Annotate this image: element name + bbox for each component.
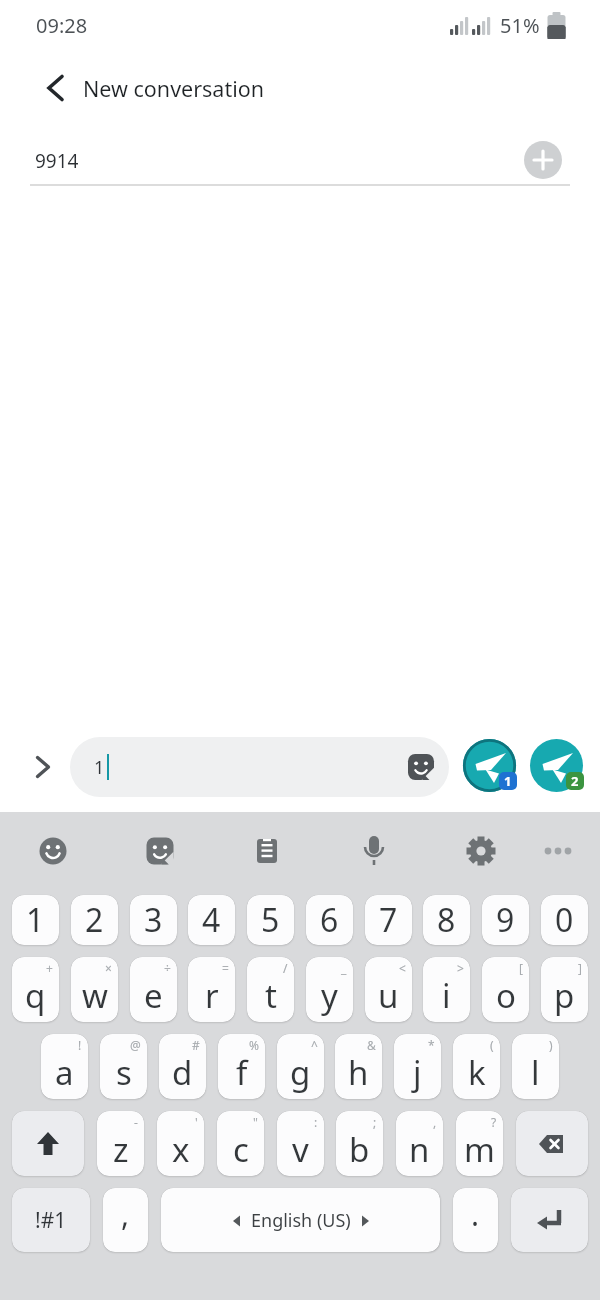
staticText: x [172, 1127, 190, 1172]
staticText: p [554, 973, 575, 1018]
staticText: m [464, 1127, 495, 1172]
button[interactable]: & [335, 1034, 382, 1099]
staticText: , [121, 1194, 130, 1235]
button[interactable]: ! [41, 1034, 88, 1099]
staticText: ! [78, 1037, 82, 1053]
button[interactable]: 4 [188, 895, 235, 945]
staticText: v [292, 1127, 309, 1172]
staticText: . [471, 1194, 480, 1235]
staticText: # [192, 1037, 200, 1053]
button[interactable]: # [159, 1034, 206, 1099]
staticText: _ [341, 960, 347, 976]
button[interactable]: 1 [70, 737, 449, 797]
button[interactable]: : [277, 1111, 324, 1176]
button[interactable]: ) [512, 1034, 559, 1099]
staticText: 1 [26, 898, 45, 942]
staticText: 8 [437, 898, 456, 942]
button[interactable]: ^ [277, 1034, 324, 1099]
button[interactable]: " [217, 1111, 264, 1176]
button[interactable] [33, 833, 73, 873]
staticText: : [314, 1114, 318, 1130]
button[interactable]: _ [306, 957, 353, 1022]
button[interactable]: = [188, 957, 235, 1022]
button[interactable]: 2 [530, 739, 586, 795]
staticText: ' [195, 1114, 198, 1130]
staticText: ( [490, 1037, 494, 1053]
button[interactable]: - [97, 1111, 144, 1176]
staticText: > [457, 960, 464, 976]
button[interactable]: < [365, 957, 412, 1022]
staticText: , [433, 1114, 437, 1130]
button[interactable]: ? [456, 1111, 503, 1176]
button[interactable]: 8 [423, 895, 470, 945]
staticText: u [378, 973, 399, 1018]
staticText: * [428, 1037, 435, 1053]
button[interactable]: ( [453, 1034, 500, 1099]
button[interactable]: 2 [71, 895, 118, 945]
button[interactable]: 1 [463, 739, 519, 795]
staticText: k [468, 1050, 486, 1095]
button[interactable]: 9 [482, 895, 529, 945]
button[interactable]: 6 [306, 895, 353, 945]
staticText: ] [578, 960, 582, 976]
staticText: / [283, 960, 288, 976]
staticText: 2 [571, 772, 579, 790]
staticText: z [113, 1127, 129, 1172]
button[interactable]: + [12, 957, 59, 1022]
button[interactable] [12, 1111, 84, 1176]
button[interactable]: . [453, 1188, 498, 1252]
staticText: n [409, 1127, 430, 1172]
staticText: 0 [555, 898, 574, 942]
staticText: f [236, 1050, 248, 1095]
button[interactable]: 3 [130, 895, 177, 945]
staticText: 3 [144, 898, 163, 942]
button[interactable]: × [71, 957, 118, 1022]
button[interactable]: ; [336, 1111, 383, 1176]
staticText: - [134, 1114, 138, 1130]
button[interactable]: , [103, 1188, 148, 1252]
button[interactable]: 7 [365, 895, 412, 945]
staticText: ; [373, 1114, 377, 1130]
staticText: e [144, 973, 163, 1018]
button[interactable]: ÷ [130, 957, 177, 1022]
staticText: × [105, 960, 112, 976]
staticText: & [367, 1037, 376, 1053]
staticText: ? [491, 1114, 497, 1130]
button[interactable] [524, 141, 562, 179]
button[interactable]: @ [100, 1034, 147, 1099]
button[interactable]: !#1 [12, 1188, 90, 1252]
staticText: !#1 [35, 1206, 67, 1235]
button[interactable]: > [423, 957, 470, 1022]
button[interactable]: % [218, 1034, 265, 1099]
staticText: q [25, 973, 46, 1018]
staticText: ÷ [164, 960, 171, 976]
button[interactable]: ] [541, 957, 588, 1022]
staticText: b [349, 1127, 370, 1172]
button[interactable] [28, 752, 58, 782]
staticText: s [116, 1050, 132, 1095]
staticText: 09:28 [36, 12, 88, 39]
staticText: d [172, 1050, 193, 1095]
button[interactable]: [ [482, 957, 529, 1022]
button[interactable]: 1 [12, 895, 59, 945]
staticText: i [442, 973, 451, 1018]
button[interactable]: English (US) [161, 1188, 440, 1252]
staticText: 5 [261, 898, 280, 942]
staticText: % [249, 1037, 259, 1053]
button[interactable]: 0 [541, 895, 588, 945]
staticText: " [253, 1114, 258, 1130]
staticText: 7 [379, 898, 398, 942]
button[interactable]: ' [157, 1111, 204, 1176]
staticText: 1 [94, 755, 105, 780]
button[interactable]: 5 [247, 895, 294, 945]
staticText: 51% [500, 12, 540, 39]
staticText: g [290, 1050, 311, 1095]
staticText: = [222, 960, 229, 976]
button[interactable]: / [247, 957, 294, 1022]
button[interactable]: * [394, 1034, 441, 1099]
button[interactable] [511, 1188, 588, 1252]
button[interactable] [32, 64, 80, 112]
button[interactable] [516, 1111, 588, 1176]
button[interactable]: , [396, 1111, 443, 1176]
staticText: c [233, 1127, 249, 1172]
